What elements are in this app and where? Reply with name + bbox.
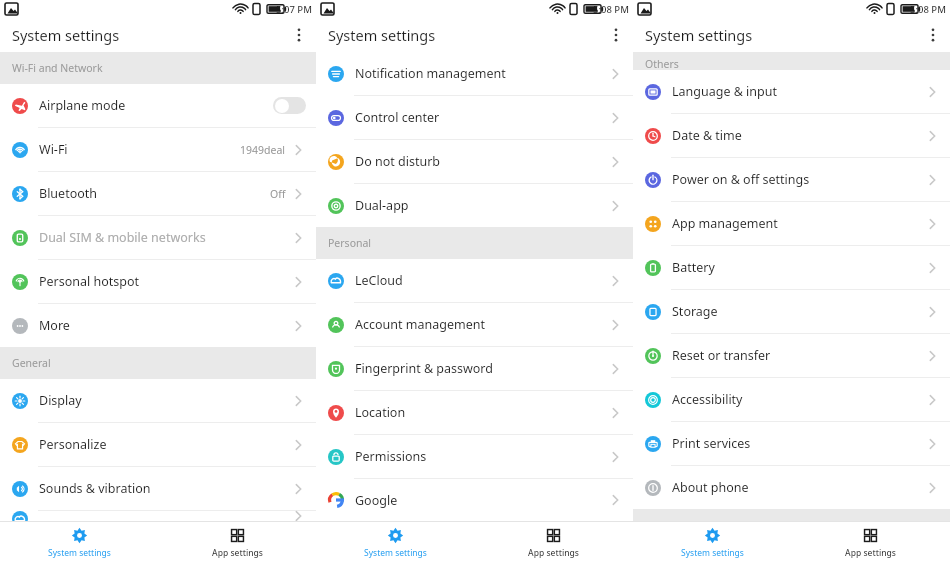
button[interactable]: Notification management: [316, 52, 633, 96]
button[interactable]: Do not disturb: [316, 140, 633, 184]
staticText: Fingerprint & password: [355, 360, 609, 377]
button[interactable]: System settings: [0, 522, 158, 563]
staticText: Display: [39, 392, 292, 409]
button[interactable]: [0, 511, 316, 521]
button[interactable]: App settings: [474, 522, 633, 563]
staticText: 5:08 PM: [593, 3, 629, 16]
button[interactable]: Location: [316, 391, 633, 435]
staticText: App settings: [212, 547, 263, 559]
button[interactable]: App management: [633, 202, 950, 246]
staticText: Accessibility: [672, 391, 926, 408]
staticText: 1949deal: [240, 143, 286, 157]
button[interactable]: Permissions: [316, 435, 633, 479]
button[interactable]: Google: [316, 479, 633, 521]
button[interactable]: Language & input: [633, 70, 950, 114]
button[interactable]: Display: [0, 379, 316, 423]
staticText: General: [12, 356, 51, 370]
button[interactable]: More options: [282, 18, 316, 52]
button[interactable]: Dual SIM & mobile networks: [0, 216, 316, 260]
button[interactable]: Account management: [316, 303, 633, 347]
staticText: System settings: [48, 547, 111, 559]
staticText: Storage: [672, 303, 926, 320]
staticText: Bluetooth: [39, 185, 270, 202]
staticText: Personalize: [39, 436, 292, 453]
staticText: Location: [355, 404, 609, 421]
staticText: 5:07 PM: [276, 3, 312, 16]
button[interactable]: Fingerprint & password: [316, 347, 633, 391]
staticText: Dual-app: [355, 197, 609, 214]
button[interactable]: Battery: [633, 246, 950, 290]
staticText: Date & time: [672, 127, 926, 144]
staticText: More: [39, 317, 292, 334]
button[interactable]: LeCloud: [316, 259, 633, 303]
button[interactable]: Power on & off settings: [633, 158, 950, 202]
staticText: Reset or transfer: [672, 347, 926, 364]
button[interactable]: Personalize: [0, 423, 316, 467]
button[interactable]: Storage: [633, 290, 950, 334]
button[interactable]: Date & time: [633, 114, 950, 158]
button[interactable]: System settings: [633, 522, 791, 563]
staticText: System settings: [364, 547, 427, 559]
staticText: Notification management: [355, 65, 609, 82]
staticText: Personal: [328, 236, 372, 250]
button[interactable]: Print services: [633, 422, 950, 466]
button[interactable]: More options: [599, 18, 633, 52]
button[interactable]: Wi-Fi: [0, 128, 316, 172]
button[interactable]: App settings: [158, 522, 316, 563]
button[interactable]: Dual-app: [316, 184, 633, 227]
staticText: Power on & off settings: [672, 171, 926, 188]
staticText: App management: [672, 215, 926, 232]
staticText: About phone: [672, 479, 926, 496]
button[interactable]: App settings: [791, 522, 950, 563]
button[interactable]: Personal hotspot: [0, 260, 316, 304]
staticText: Control center: [355, 109, 609, 126]
staticText: App settings: [845, 547, 896, 559]
staticText: Account management: [355, 316, 609, 333]
staticText: Airplane mode: [39, 97, 273, 114]
button[interactable]: Airplane mode toggle: [273, 97, 306, 114]
staticText: System settings: [12, 25, 120, 45]
staticText: Print services: [672, 435, 926, 452]
staticText: Off: [270, 187, 286, 201]
staticText: Dual SIM & mobile networks: [39, 229, 292, 246]
staticText: Wi-Fi: [39, 141, 240, 158]
staticText: Sounds & vibration: [39, 480, 292, 497]
button[interactable]: Accessibility: [633, 378, 950, 422]
button[interactable]: Reset or transfer: [633, 334, 950, 378]
button[interactable]: About phone: [633, 466, 950, 509]
staticText: Personal hotspot: [39, 273, 292, 290]
staticText: Language & input: [672, 83, 926, 100]
button[interactable]: Sounds & vibration: [0, 467, 316, 511]
staticText: Do not disturb: [355, 153, 609, 170]
staticText: System settings: [681, 547, 744, 559]
staticText: App settings: [528, 547, 579, 559]
button[interactable]: Airplane mode: [0, 84, 316, 128]
staticText: Battery: [672, 259, 926, 276]
staticText: System settings: [645, 25, 753, 45]
staticText: Others: [645, 57, 679, 70]
staticText: 5:08 PM: [910, 3, 946, 16]
staticText: Permissions: [355, 448, 609, 465]
button[interactable]: More: [0, 304, 316, 347]
staticText: Google: [355, 492, 609, 509]
staticText: Wi-Fi and Network: [12, 61, 103, 75]
button[interactable]: Control center: [316, 96, 633, 140]
button[interactable]: Bluetooth: [0, 172, 316, 216]
staticText: System settings: [328, 25, 436, 45]
staticText: LeCloud: [355, 272, 609, 289]
button[interactable]: More options: [916, 18, 950, 52]
button[interactable]: System settings: [316, 522, 474, 563]
